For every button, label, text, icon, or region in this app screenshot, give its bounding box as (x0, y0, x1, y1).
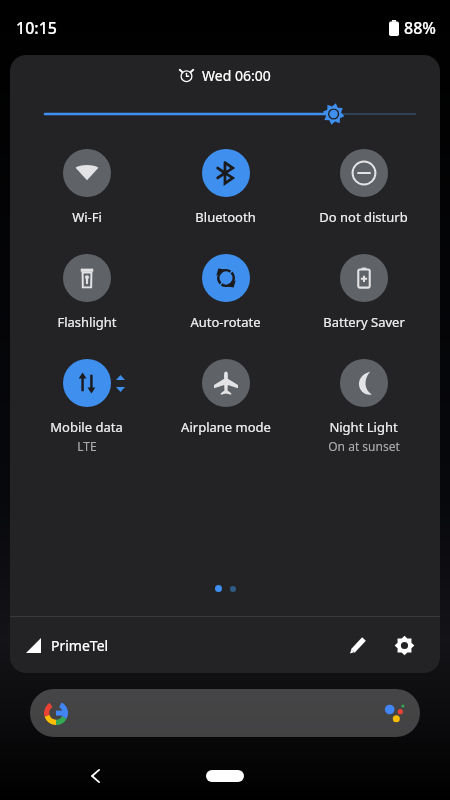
button[interactable]: Auto-rotate (163, 254, 288, 331)
button[interactable]: Home (197, 765, 253, 787)
staticText: Bluetooth (195, 208, 256, 226)
staticText: Flashlight (57, 313, 117, 331)
button[interactable]: PrimeTel (26, 636, 109, 655)
button[interactable]: Back (78, 758, 114, 794)
staticText: LTE (77, 438, 97, 454)
button[interactable]: Brightness (10, 95, 440, 133)
button[interactable]: Do not disturb (301, 149, 426, 226)
staticText: Mobile data (50, 418, 123, 436)
button[interactable]: Settings (384, 625, 424, 665)
staticText: Wi-Fi (72, 208, 102, 226)
staticText: Night Light (329, 418, 398, 436)
staticText: PrimeTel (51, 636, 109, 655)
button[interactable]: Bluetooth (163, 149, 288, 226)
staticText: On at sunset (328, 438, 400, 454)
button[interactable]: Edit (338, 625, 378, 665)
button[interactable]: Battery Saver (301, 254, 426, 331)
button[interactable]: Mobile data (24, 359, 149, 454)
staticText: 88% (404, 17, 436, 39)
button[interactable]: Wi-Fi (24, 149, 149, 226)
button[interactable]: Search (30, 689, 420, 737)
button[interactable]: Wed 06:00 (10, 55, 440, 95)
button[interactable]: Airplane mode (163, 359, 288, 436)
staticText: Airplane mode (181, 418, 271, 436)
staticText: Battery Saver (323, 313, 405, 331)
button[interactable]: Flashlight (24, 254, 149, 331)
staticText: Auto-rotate (190, 313, 261, 331)
staticText: Do not disturb (319, 208, 408, 226)
staticText: 10:15 (16, 17, 57, 39)
staticText: Wed 06:00 (202, 66, 271, 85)
button[interactable]: Night Light (301, 359, 426, 454)
